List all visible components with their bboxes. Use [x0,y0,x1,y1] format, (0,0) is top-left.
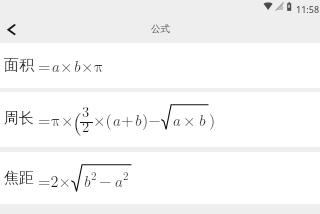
staticText: b [198,108,206,131]
button[interactable]: 面积 [0,43,320,88]
button[interactable]: 周长 [0,92,320,147]
staticText: = [38,108,51,131]
staticText: × [81,54,94,77]
staticText: 公式 [151,23,170,35]
staticText: a [112,108,121,131]
staticText: b [83,169,91,192]
staticText: 焦距 [4,169,34,188]
staticText: b [134,108,142,131]
staticText: 11:58 [296,3,320,15]
staticText: × [61,108,74,131]
staticText: 周长 [4,109,34,128]
staticText: a [51,54,60,77]
staticText: = [38,54,51,77]
staticText: ×( [93,108,112,131]
staticText: 2 [82,116,90,137]
staticText: 3 [82,101,90,122]
staticText: π [51,113,61,129]
staticText: × [60,54,73,77]
staticText: a [114,169,123,192]
staticText: π [94,59,104,75]
staticText: − [99,169,112,192]
staticText: =2× [38,169,71,192]
staticText: × [183,108,196,131]
staticText: 面积 [4,56,34,75]
staticText: 2 [91,168,97,184]
button[interactable]: Back [0,17,24,43]
staticText: a [172,108,181,131]
staticText: )− [142,108,161,131]
staticText: ( [73,104,82,137]
staticText: 2 [123,168,129,184]
staticText: ) [209,108,216,131]
staticText: + [121,108,134,131]
staticText: b [73,54,81,77]
button[interactable]: 焦距 [0,152,320,204]
